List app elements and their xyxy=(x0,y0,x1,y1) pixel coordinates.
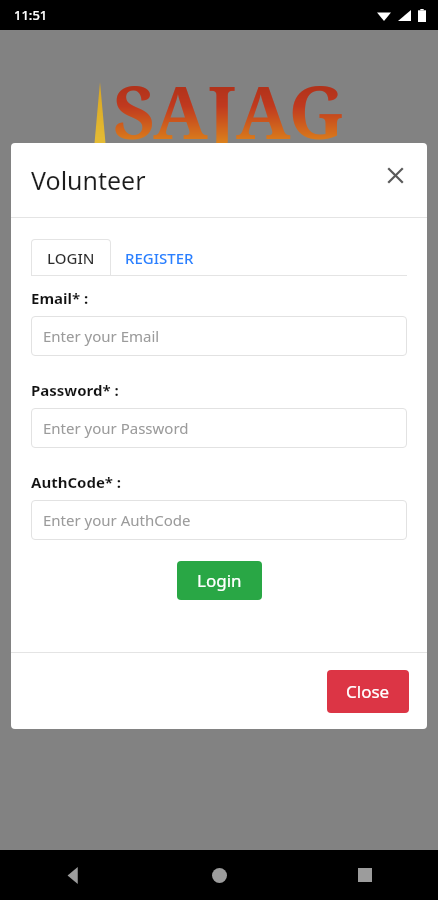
staticText: Login xyxy=(197,569,242,592)
staticText: Password* : xyxy=(31,380,119,400)
button[interactable]: Enter your AuthCode xyxy=(31,500,407,540)
staticText: Enter your AuthCode xyxy=(43,510,191,530)
button[interactable]: Login xyxy=(177,561,262,600)
button[interactable]: Enter your Password xyxy=(31,408,407,448)
staticText: LOGIN xyxy=(47,248,95,268)
button[interactable]: Enter your Email xyxy=(31,316,407,356)
button[interactable]: REGISTER xyxy=(111,239,208,276)
staticText: Volunteer xyxy=(31,163,146,197)
staticText: AuthCode* : xyxy=(31,472,122,492)
staticText: REGISTER xyxy=(125,248,194,268)
staticText: Enter your Email xyxy=(43,326,160,346)
button[interactable]: Close xyxy=(327,670,409,713)
staticText: Enter your Password xyxy=(43,418,189,438)
button[interactable]: LOGIN xyxy=(31,239,111,276)
button[interactable]: Recent apps xyxy=(292,850,438,900)
staticText: Email* : xyxy=(31,288,89,308)
staticText: 11:51 xyxy=(14,6,48,24)
button[interactable]: Home xyxy=(146,850,292,900)
button[interactable]: Close dialog xyxy=(375,155,415,195)
staticText: SAJAG xyxy=(113,62,345,160)
button[interactable]: Back xyxy=(0,850,146,900)
staticText: Close xyxy=(346,680,390,703)
